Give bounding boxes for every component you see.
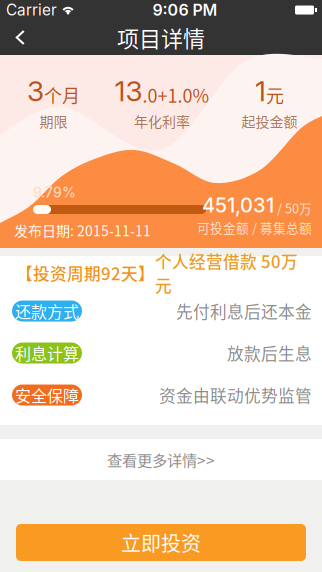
button[interactable]: 安全保障 [0, 374, 322, 416]
staticText: 9:06 PM [152, 0, 217, 20]
staticText: 放款后生息 [227, 341, 312, 365]
staticText: 还款方式 [15, 299, 79, 323]
staticText: 9.79% [33, 184, 76, 201]
staticText: 个人经营借款 50万元 [155, 249, 298, 297]
button[interactable]: 查看更多详情>> [0, 439, 322, 480]
staticText: 发布日期: 2015-11-11 [14, 220, 151, 240]
staticText: 13 [114, 74, 142, 108]
staticText: 起投金额 [241, 111, 297, 131]
staticText: 查看更多详情>> [107, 448, 215, 471]
staticText: 期限 [39, 111, 67, 131]
button[interactable]: 还款方式 [0, 290, 322, 332]
staticText: 利息计算 [15, 341, 79, 365]
staticText: 【投资周期92天】 [16, 261, 155, 285]
staticText: 451,031 [202, 193, 274, 217]
button[interactable]: 利息计算 [0, 332, 322, 374]
staticText: 资金由联动优势监管 [159, 383, 312, 407]
staticText: 3 [27, 74, 44, 108]
staticText: 个月 [44, 82, 80, 108]
staticText: / 50万 [277, 199, 312, 217]
staticText: 先付利息后还本金 [176, 299, 312, 323]
staticText: 可投金额 / 募集总额 [197, 218, 312, 236]
staticText: 立即投资 [121, 528, 201, 557]
staticText: Carrier [6, 1, 57, 19]
staticText: 项目详情 [117, 22, 205, 53]
button[interactable]: 立即投资 [16, 524, 306, 561]
staticText: 年化利率 [134, 111, 190, 131]
button[interactable]: Back [0, 20, 40, 54]
staticText: .0+1.0% [142, 82, 209, 108]
staticText: 元 [266, 82, 284, 108]
staticText: 安全保障 [15, 383, 79, 407]
staticText: 1 [255, 74, 266, 108]
